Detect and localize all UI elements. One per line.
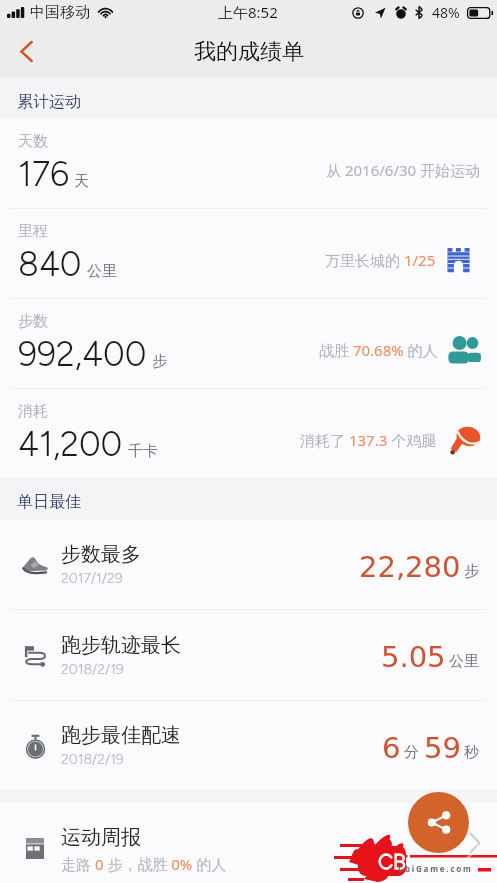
staticText: 中国移动 bbox=[30, 3, 90, 22]
staticText: 公里 bbox=[87, 262, 117, 281]
staticText: 176 bbox=[18, 154, 69, 195]
staticText: 步 bbox=[464, 562, 479, 581]
staticText: 992,400 bbox=[18, 334, 147, 375]
staticText: 步 bbox=[152, 352, 167, 371]
staticText: 上午8:52 bbox=[218, 2, 278, 22]
staticText: 步数最多 bbox=[61, 542, 141, 567]
staticText: 步数 bbox=[18, 312, 48, 331]
button[interactable]: 消耗 bbox=[0, 389, 497, 478]
button[interactable]: 运动周报 bbox=[0, 803, 497, 883]
button[interactable]: 跑步最佳配速 bbox=[0, 701, 497, 790]
staticText: 公里 bbox=[449, 652, 479, 671]
staticText: 跑步轨迹最长 bbox=[61, 633, 181, 658]
staticText: 秒 bbox=[464, 743, 479, 762]
button[interactable]: Back bbox=[4, 29, 48, 73]
staticText: 跑步最佳配速 bbox=[61, 723, 181, 748]
staticText: 单日最佳 bbox=[17, 492, 81, 512]
staticText: 840 bbox=[18, 244, 82, 285]
button[interactable]: Share bbox=[408, 792, 469, 853]
staticText: 消耗 bbox=[18, 402, 48, 421]
staticText: 天数 bbox=[18, 132, 48, 151]
staticText: 41,200 bbox=[18, 424, 123, 465]
staticText: 从 2016/6/30 开始运动 bbox=[326, 160, 481, 180]
staticText: 2017/1/29 bbox=[61, 570, 123, 587]
button[interactable]: 步数 bbox=[0, 299, 497, 388]
button[interactable]: 天数 bbox=[0, 119, 497, 208]
staticText: 天 bbox=[74, 172, 89, 191]
staticText: 2018/2/19 bbox=[61, 661, 124, 678]
staticText: 5.05 bbox=[381, 640, 446, 674]
staticText: 走路 0 步，战胜 0% 的人 bbox=[61, 854, 227, 874]
staticText: 59 bbox=[424, 731, 461, 765]
staticText: 运动周报 bbox=[61, 825, 141, 850]
staticText: CbiGame.com bbox=[398, 863, 473, 874]
staticText: 48% bbox=[432, 3, 460, 22]
button[interactable]: 步数最多 bbox=[0, 520, 497, 609]
staticText: 万里长城的 1/25 bbox=[325, 250, 436, 270]
staticText: 22,280 bbox=[359, 550, 461, 584]
staticText: 战胜 70.68% 的人 bbox=[319, 340, 438, 360]
staticText: 分 bbox=[404, 743, 419, 762]
staticText: 里程 bbox=[18, 222, 48, 241]
staticText: 我的成绩单 bbox=[194, 38, 304, 66]
staticText: 千卡 bbox=[128, 442, 158, 461]
staticText: 2018/2/19 bbox=[61, 751, 124, 768]
button[interactable]: 跑步轨迹最长 bbox=[0, 610, 497, 700]
staticText: CBI bbox=[378, 849, 412, 874]
button[interactable]: 里程 bbox=[0, 209, 497, 298]
staticText: 累计运动 bbox=[17, 92, 81, 112]
staticText: 6 bbox=[382, 731, 401, 765]
staticText: 消耗了 137.3 个鸡腿 bbox=[300, 430, 437, 450]
